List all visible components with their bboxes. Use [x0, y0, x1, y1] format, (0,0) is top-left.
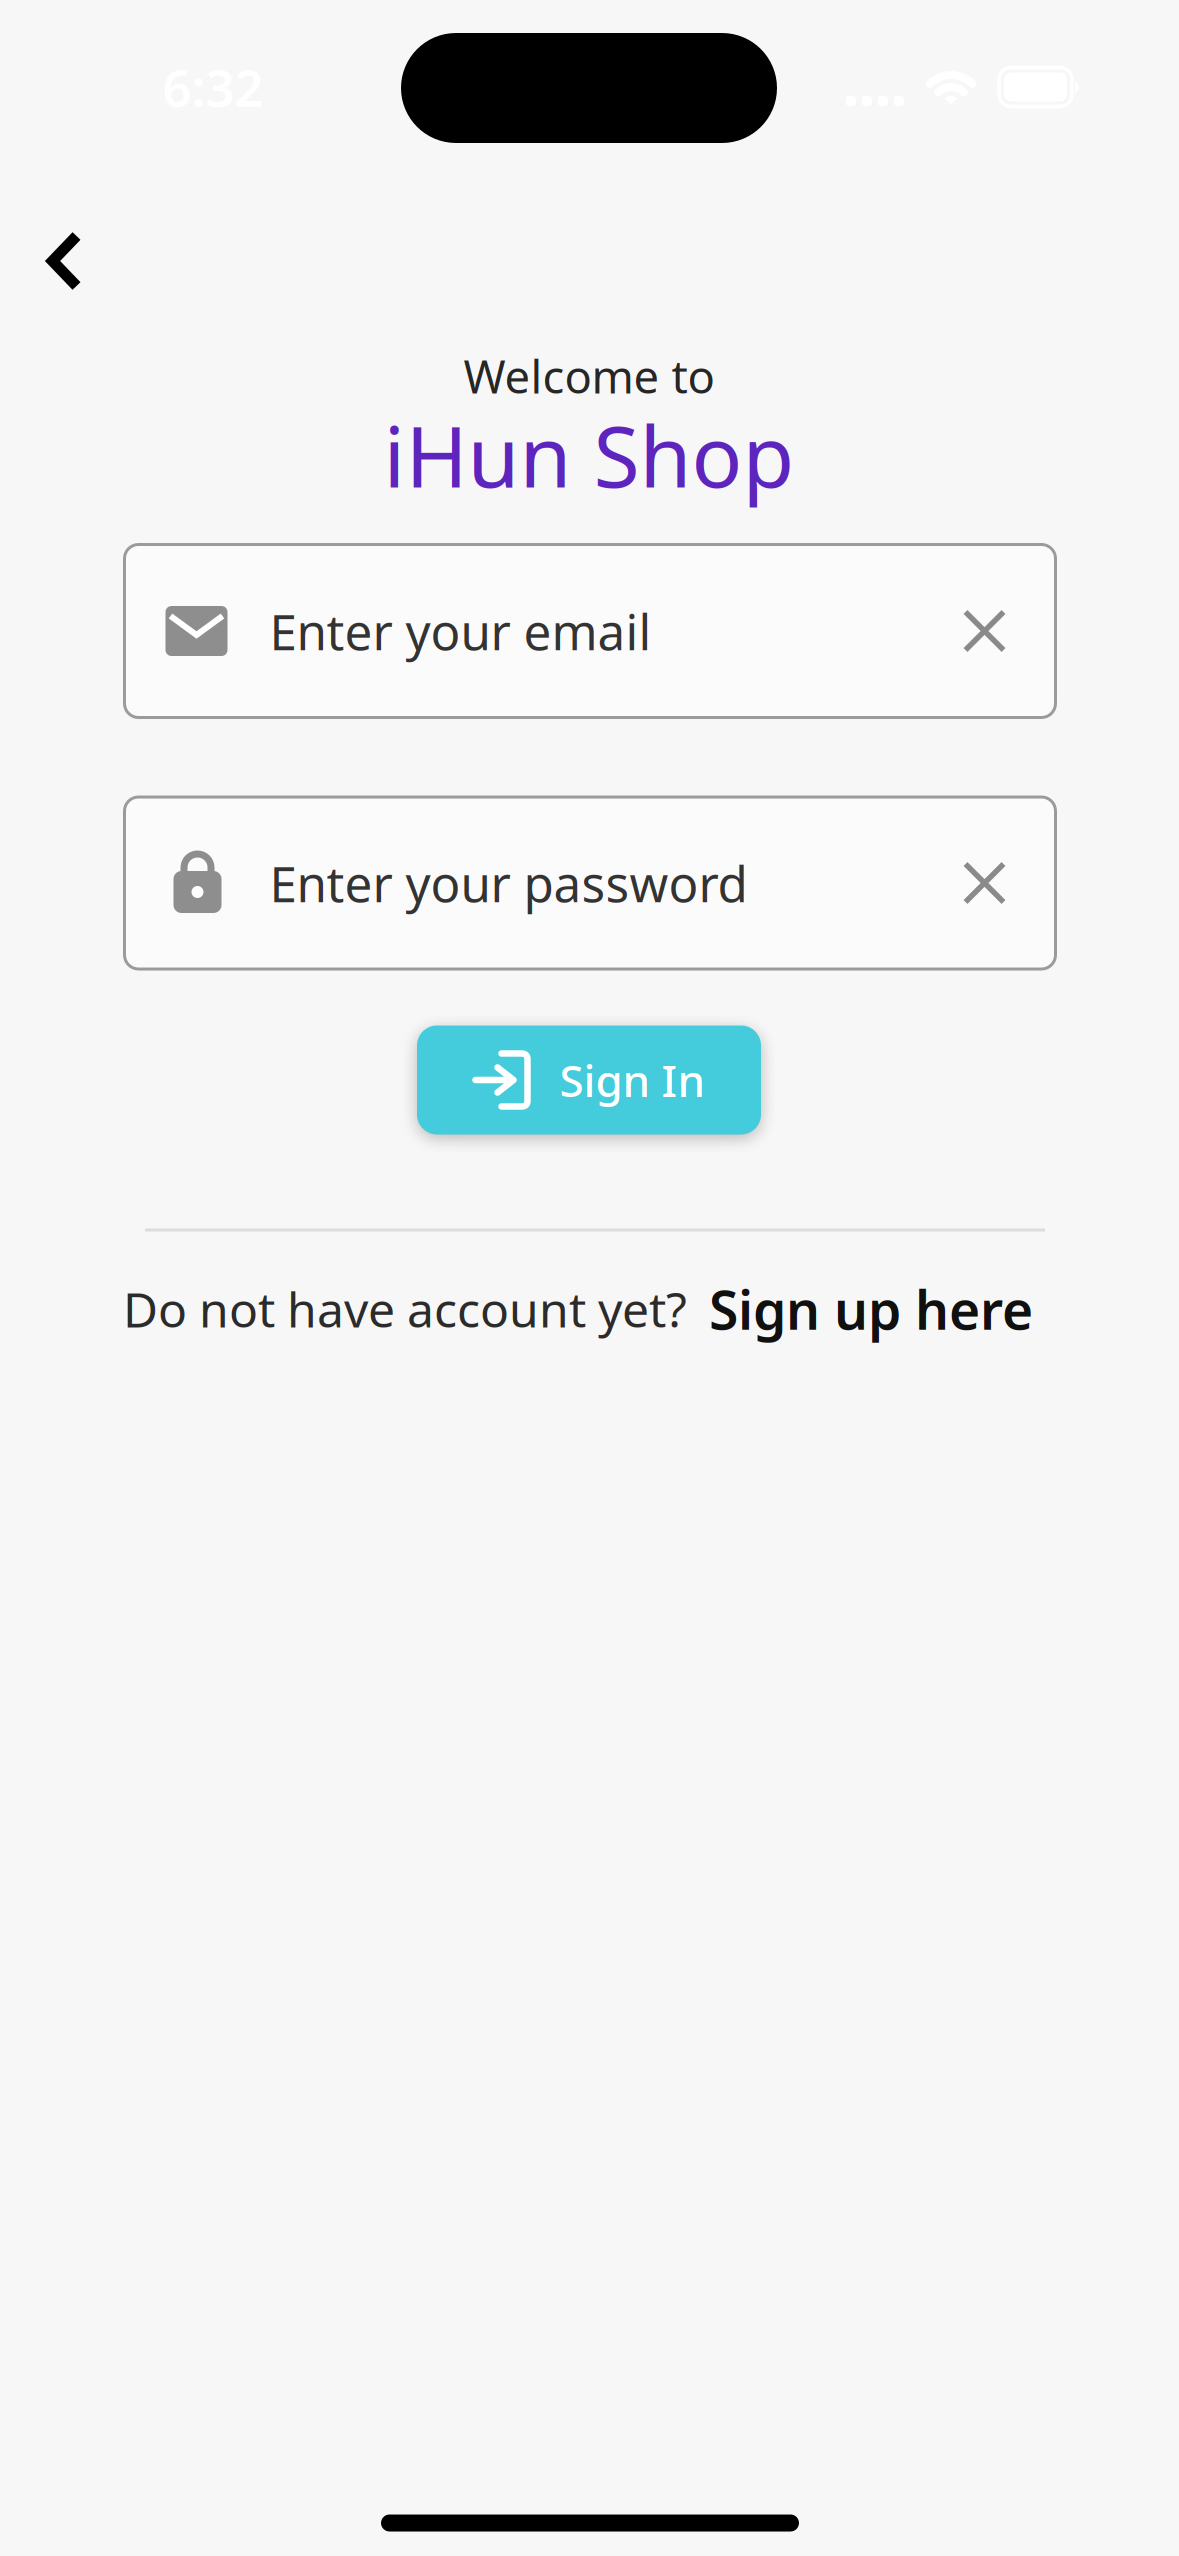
button[interactable]: Sign up here: [709, 1274, 1033, 1344]
button[interactable]: Clear password: [963, 862, 1005, 904]
staticText: iHun Shop: [383, 399, 794, 511]
staticText: Enter your email: [269, 598, 651, 664]
staticText: Sign up here: [709, 1274, 1033, 1344]
button[interactable]: Clear email: [963, 610, 1005, 652]
staticText: Sign In: [559, 1051, 705, 1109]
button[interactable]: Sign In: [417, 1025, 761, 1134]
staticText: Do not have account yet?: [123, 1277, 687, 1341]
staticText: Welcome to: [463, 346, 714, 406]
button[interactable]: Back: [31, 216, 97, 306]
staticText: Enter your password: [269, 850, 747, 916]
staticText: 6:32: [162, 53, 263, 121]
